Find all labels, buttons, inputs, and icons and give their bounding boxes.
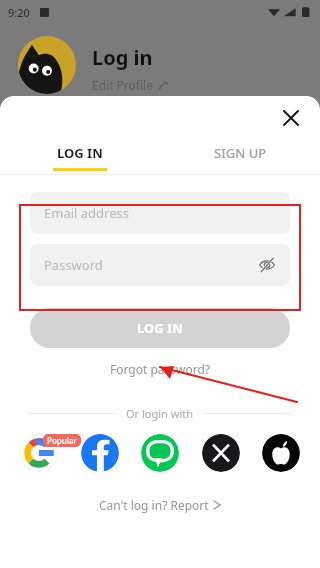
staticText: Or login with	[126, 406, 194, 421]
button[interactable]: LOG IN	[30, 308, 290, 348]
button[interactable]: Sign in with Google	[20, 434, 58, 472]
staticText: Password	[44, 256, 103, 274]
button[interactable]: SIGN UP	[160, 140, 320, 174]
staticText: Email address	[44, 204, 129, 222]
staticText: Can't log in? Report	[99, 497, 209, 513]
button[interactable]: Sign in with LINE	[141, 434, 179, 472]
button[interactable]: Show password	[254, 252, 280, 278]
button[interactable]: Forgot password?	[102, 359, 219, 379]
staticText: Edit Profile	[92, 77, 153, 93]
staticText: 9:20	[8, 5, 30, 20]
button[interactable]: Email address	[30, 192, 290, 234]
button[interactable]: Can't log in? Report	[91, 494, 229, 516]
staticText: SIGN UP	[214, 144, 267, 162]
button[interactable]: Sign in with X	[202, 434, 240, 472]
staticText: LOG IN	[137, 319, 183, 337]
staticText: LOG IN	[57, 144, 103, 162]
staticText: Forgot password?	[110, 361, 211, 377]
button[interactable]: Sign in with Facebook	[81, 434, 119, 472]
button[interactable]: Close	[276, 103, 306, 133]
button[interactable]: LOG IN	[0, 140, 160, 174]
staticText: Log in	[92, 44, 153, 71]
staticText: Popular	[47, 435, 77, 446]
button[interactable]: Password	[30, 244, 290, 286]
button[interactable]: Sign in with Apple	[262, 434, 300, 472]
